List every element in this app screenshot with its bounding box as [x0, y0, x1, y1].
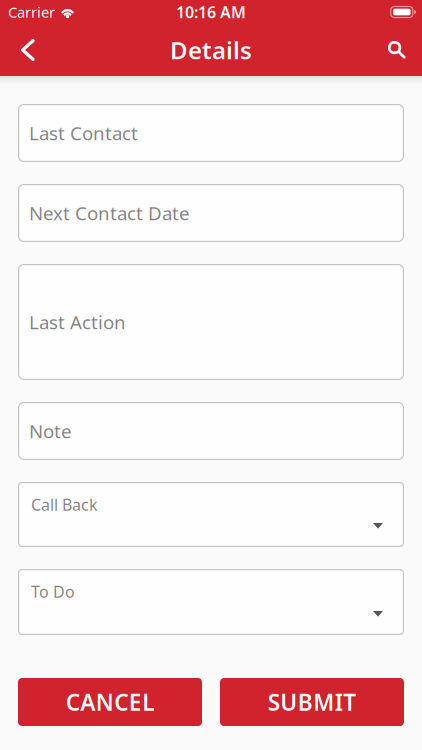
staticText: Last Contact: [29, 121, 138, 145]
button[interactable]: Next Contact Date: [18, 184, 404, 242]
staticText: To Do: [31, 581, 75, 602]
staticText: Details: [170, 34, 252, 66]
staticText: Note: [29, 419, 72, 443]
button[interactable]: To Do: [18, 569, 404, 635]
staticText: Carrier: [8, 2, 55, 22]
staticText: SUBMIT: [268, 687, 356, 717]
button[interactable]: CANCEL: [18, 678, 202, 726]
button[interactable]: Call Back: [18, 482, 404, 547]
staticText: Next Contact Date: [29, 201, 190, 225]
button[interactable]: Last Contact: [18, 104, 404, 162]
button[interactable]: Note: [18, 402, 404, 460]
button[interactable]: Back: [0, 39, 35, 61]
staticText: Last Action: [29, 310, 126, 334]
button[interactable]: Search: [388, 41, 422, 59]
staticText: CANCEL: [66, 687, 154, 717]
button[interactable]: SUBMIT: [220, 678, 404, 726]
staticText: Call Back: [31, 494, 98, 515]
button[interactable]: Last Action: [18, 264, 404, 380]
staticText: 10:16 AM: [176, 1, 246, 23]
